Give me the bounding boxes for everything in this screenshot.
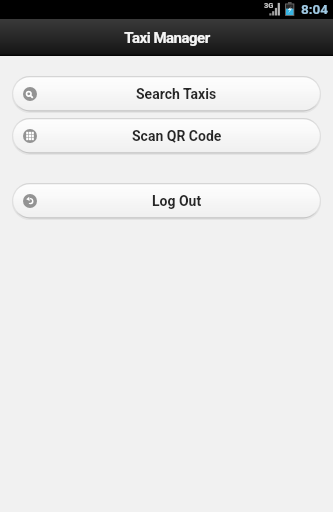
staticText: Scan QR Code: [132, 128, 222, 144]
button[interactable]: Log Out: [12, 183, 321, 220]
staticText: Search Taxis: [136, 86, 217, 102]
staticText: Taxi Manager: [124, 29, 210, 47]
staticText: 3G: [264, 1, 274, 10]
staticText: Log Out: [152, 193, 202, 209]
button[interactable]: Search Taxis: [12, 76, 321, 113]
button[interactable]: Scan QR Code: [12, 118, 321, 155]
staticText: 8:04: [301, 1, 329, 17]
